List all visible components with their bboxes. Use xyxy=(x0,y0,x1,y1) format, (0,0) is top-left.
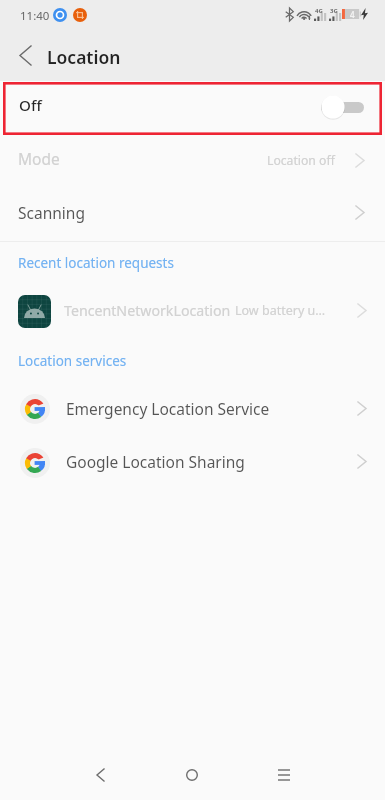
staticText: Recent location requests xyxy=(18,254,174,272)
button[interactable]: Scanning xyxy=(0,186,385,241)
staticText: 11:40 xyxy=(20,8,50,24)
button[interactable]: Mode xyxy=(0,136,385,186)
staticText: 3G xyxy=(330,7,338,15)
staticText: Location services xyxy=(18,352,127,370)
button[interactable]: Google Location Sharing xyxy=(0,436,385,489)
staticText: Mode xyxy=(18,148,60,169)
staticText: 4G xyxy=(315,7,323,15)
button[interactable]: Home xyxy=(157,750,227,800)
staticText: Emergency Location Service xyxy=(66,398,270,419)
button[interactable]: Recent apps xyxy=(249,750,319,800)
staticText: Location xyxy=(47,45,121,69)
staticText: Low battery u… xyxy=(235,302,326,319)
button[interactable]: Emergency Location Service xyxy=(0,382,385,436)
button[interactable]: Back xyxy=(65,750,135,800)
button[interactable]: TencentNetworkLocation xyxy=(0,288,385,334)
button[interactable]: Navigate up xyxy=(0,29,51,81)
staticText: TencentNetworkLocation xyxy=(64,301,231,320)
staticText: Location off xyxy=(267,152,335,169)
button[interactable]: Off xyxy=(0,81,385,136)
staticText: 4 xyxy=(350,9,355,19)
staticText: Off xyxy=(19,95,42,116)
staticText: Google Location Sharing xyxy=(66,451,245,472)
staticText: Scanning xyxy=(18,202,85,223)
